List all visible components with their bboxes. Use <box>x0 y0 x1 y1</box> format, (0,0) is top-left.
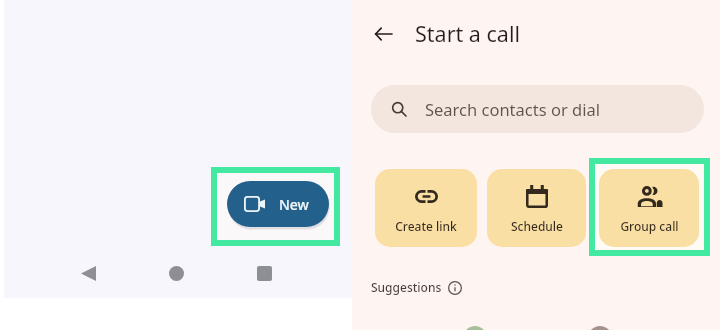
button[interactable]: Suggested contact <box>463 326 487 330</box>
button[interactable]: Group call <box>599 169 699 247</box>
button[interactable]: Back <box>76 261 100 285</box>
button[interactable]: Create link <box>375 169 477 247</box>
button[interactable]: Search contacts or dial <box>371 85 704 133</box>
staticText: Create link <box>395 218 457 234</box>
button[interactable]: New <box>227 181 329 227</box>
button[interactable]: Home <box>164 261 188 285</box>
button[interactable]: Recents <box>252 261 276 285</box>
button[interactable]: Info <box>447 280 462 295</box>
staticText: Schedule <box>511 218 563 234</box>
staticText: Search contacts or dial <box>425 98 600 120</box>
staticText: Start a call <box>415 19 520 48</box>
button[interactable]: Back <box>368 19 398 49</box>
button[interactable]: Suggested contact <box>588 326 612 330</box>
button[interactable]: Schedule <box>487 169 586 247</box>
staticText: Suggestions <box>371 279 442 295</box>
staticText: New <box>279 195 309 214</box>
staticText: Group call <box>620 218 679 234</box>
